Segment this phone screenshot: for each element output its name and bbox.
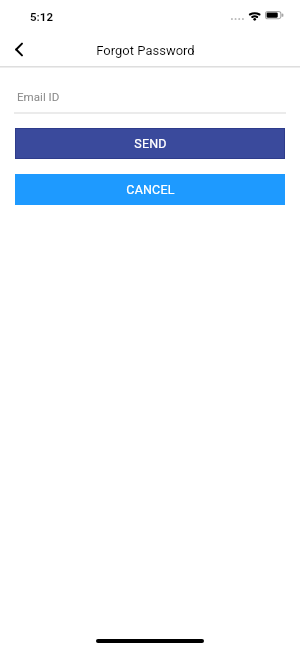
button[interactable]: Email ID: [14, 82, 286, 113]
button[interactable]: SEND: [15, 128, 285, 159]
staticText: Email ID: [17, 90, 60, 104]
button[interactable]: CANCEL: [15, 174, 285, 205]
staticText: 5:12: [30, 10, 54, 23]
staticText: Forgot Password: [0, 43, 292, 58]
staticText: SEND: [134, 136, 167, 151]
staticText: CANCEL: [126, 182, 175, 197]
button[interactable]: Back: [2, 33, 36, 65]
